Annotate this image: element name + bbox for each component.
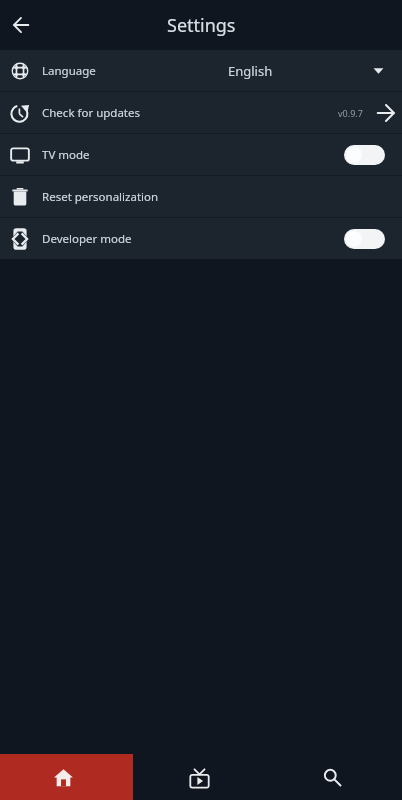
button[interactable]: Toggle — [344, 145, 385, 165]
button[interactable]: Reset personalization — [0, 176, 402, 217]
staticText: Developer mode — [42, 231, 132, 247]
staticText: English — [228, 62, 273, 80]
button[interactable]: Developer mode — [0, 218, 402, 259]
staticText: Language — [42, 63, 96, 79]
staticText: Check for updates — [42, 105, 141, 121]
button[interactable]: Home — [0, 754, 133, 800]
button[interactable]: Back — [5, 9, 37, 41]
staticText: TV mode — [42, 147, 90, 163]
button[interactable]: Live TV — [133, 754, 267, 800]
button[interactable]: TV mode — [0, 134, 402, 175]
button[interactable]: Toggle — [344, 229, 385, 249]
button[interactable]: Check for updates — [0, 92, 402, 133]
button[interactable]: Language — [0, 50, 402, 91]
staticText: Settings — [167, 13, 236, 38]
staticText: v0.9.7 — [338, 107, 363, 119]
button[interactable]: Search — [267, 754, 402, 800]
staticText: Reset personalization — [42, 189, 159, 205]
